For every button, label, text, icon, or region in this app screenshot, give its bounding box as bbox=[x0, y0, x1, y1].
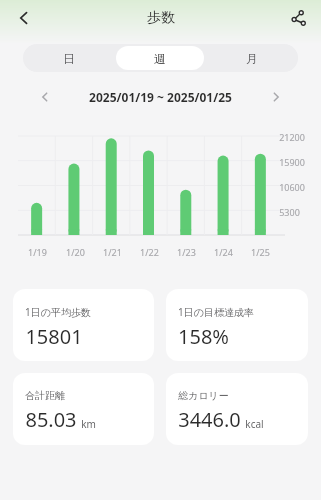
staticText: 歩数 bbox=[147, 9, 175, 27]
button[interactable]: Next week bbox=[265, 86, 287, 108]
button[interactable]: Share bbox=[279, 0, 315, 36]
button[interactable]: 月 bbox=[208, 46, 296, 70]
staticText: 158% bbox=[178, 323, 229, 350]
button[interactable]: 1日の平均歩数 bbox=[13, 289, 154, 361]
staticText: 1/20 bbox=[66, 246, 85, 258]
button[interactable]: Back bbox=[6, 0, 42, 36]
staticText: 日 bbox=[63, 51, 75, 66]
staticText: 5300 bbox=[279, 206, 300, 218]
button[interactable]: 週 bbox=[116, 46, 204, 70]
button[interactable]: Previous week bbox=[34, 86, 56, 108]
staticText: 1日の平均歩数 bbox=[25, 305, 91, 319]
staticText: 1/24 bbox=[214, 246, 233, 258]
staticText: 21200 bbox=[279, 131, 305, 143]
staticText: 1/19 bbox=[28, 246, 47, 258]
staticText: 月 bbox=[246, 51, 258, 66]
button[interactable]: 合計距離 bbox=[13, 373, 154, 445]
staticText: 1/23 bbox=[177, 246, 196, 258]
staticText: 総カロリー bbox=[178, 389, 229, 402]
staticText: kcal bbox=[245, 417, 264, 431]
staticText: 3446.0 bbox=[178, 406, 241, 433]
staticText: 2025/01/19 ~ 2025/01/25 bbox=[89, 89, 232, 105]
staticText: 15900 bbox=[279, 156, 305, 168]
staticText: 10600 bbox=[279, 181, 305, 193]
staticText: 15801 bbox=[25, 323, 83, 350]
button[interactable]: 総カロリー bbox=[166, 373, 308, 445]
staticText: 1/25 bbox=[251, 246, 270, 258]
staticText: km bbox=[81, 417, 96, 431]
button[interactable]: 1日の目標達成率 bbox=[166, 289, 308, 361]
staticText: 85.03 bbox=[25, 406, 77, 433]
staticText: 1日の目標達成率 bbox=[178, 305, 254, 319]
staticText: 1/22 bbox=[140, 246, 159, 258]
staticText: 1/21 bbox=[103, 246, 122, 258]
staticText: 週 bbox=[154, 51, 166, 66]
staticText: 合計距離 bbox=[25, 389, 65, 402]
button[interactable]: 日 bbox=[25, 46, 112, 70]
